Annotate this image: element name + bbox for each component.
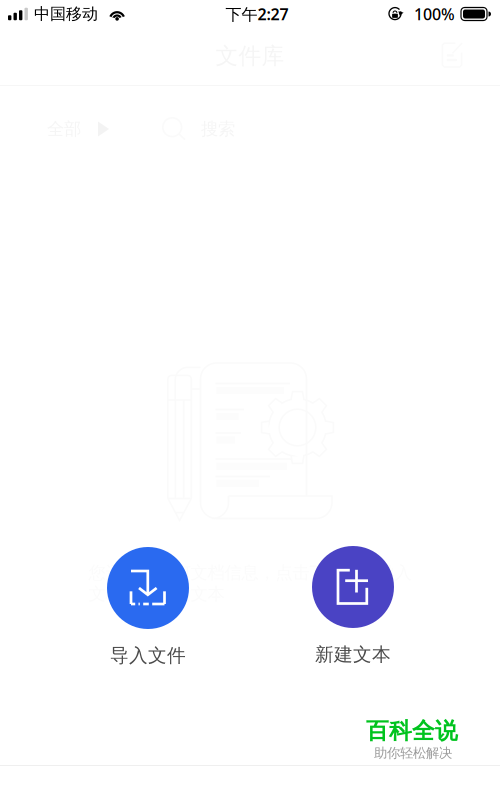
staticText: 搜索 bbox=[201, 118, 235, 140]
staticText: 新建文本 bbox=[315, 643, 391, 666]
staticText: 您还没有任何文档信息，点击下方按钮导入文档或者新建文本 bbox=[88, 562, 411, 605]
staticText: 文件库 bbox=[215, 42, 284, 70]
button[interactable]: 新建文本 bbox=[312, 546, 394, 666]
staticText: 中国移动 bbox=[34, 4, 98, 24]
staticText: 全部 bbox=[47, 118, 81, 140]
staticText: 导入文件 bbox=[110, 644, 186, 667]
button[interactable]: 全部 bbox=[47, 118, 109, 140]
staticText: 百科全说 bbox=[366, 717, 458, 745]
staticText: 助你轻松解决 bbox=[374, 745, 452, 761]
staticText: 100% bbox=[414, 3, 455, 25]
button[interactable]: 导入文件 bbox=[107, 547, 189, 667]
staticText: 下午2:27 bbox=[225, 3, 288, 25]
